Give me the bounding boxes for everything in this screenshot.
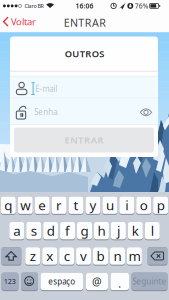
staticText: o bbox=[140, 196, 148, 214]
staticText: k bbox=[132, 222, 139, 239]
button[interactable]: E-mail bbox=[10, 71, 158, 98]
button[interactable]: z bbox=[25, 247, 40, 266]
button[interactable]: m bbox=[127, 247, 142, 266]
staticText: w bbox=[20, 196, 30, 214]
button[interactable]: . bbox=[110, 273, 129, 291]
staticText: . bbox=[118, 276, 121, 291]
staticText: OUTROS bbox=[65, 47, 104, 60]
button[interactable]: v bbox=[76, 247, 91, 266]
staticText: e bbox=[38, 196, 46, 214]
button[interactable]: i bbox=[119, 196, 134, 215]
staticText: l bbox=[151, 222, 154, 239]
staticText: 123 bbox=[4, 277, 16, 286]
button[interactable]: Voltar bbox=[1, 14, 39, 29]
staticText: j bbox=[117, 222, 120, 239]
button[interactable]: j bbox=[111, 222, 126, 240]
staticText: r bbox=[56, 196, 62, 214]
staticText: u bbox=[106, 196, 114, 214]
button[interactable]: Emoji bbox=[21, 273, 38, 291]
staticText: Seguinte bbox=[132, 276, 166, 287]
staticText: E-mail bbox=[35, 83, 57, 94]
button[interactable]: h bbox=[94, 222, 109, 240]
staticText: Senha bbox=[34, 107, 57, 117]
button[interactable]: k bbox=[128, 222, 143, 240]
button[interactable]: p bbox=[153, 196, 168, 215]
button[interactable]: t bbox=[68, 196, 83, 215]
button[interactable]: Apagar bbox=[148, 247, 167, 266]
button[interactable]: @ bbox=[86, 273, 108, 291]
staticText: a bbox=[13, 222, 20, 239]
staticText: Claro BR bbox=[24, 2, 43, 10]
button[interactable]: x bbox=[42, 247, 57, 266]
staticText: ENTRAR bbox=[64, 134, 103, 146]
staticText: p bbox=[157, 196, 165, 214]
staticText: y bbox=[89, 196, 96, 214]
staticText: Voltar bbox=[11, 15, 36, 28]
staticText: ENTRAR bbox=[64, 15, 106, 30]
staticText: s bbox=[31, 222, 37, 239]
button[interactable]: w bbox=[18, 196, 33, 215]
staticText: @ bbox=[92, 274, 102, 288]
button[interactable]: a bbox=[9, 222, 24, 240]
button[interactable]: b bbox=[93, 247, 108, 266]
staticText: v bbox=[80, 247, 87, 265]
staticText: 76% bbox=[135, 2, 149, 10]
button[interactable]: o bbox=[136, 196, 151, 215]
staticText: b bbox=[96, 247, 104, 265]
button[interactable]: Senha bbox=[10, 98, 158, 124]
button[interactable]: e bbox=[35, 196, 50, 215]
button[interactable]: d bbox=[43, 222, 58, 240]
button[interactable]: 123 bbox=[1, 273, 18, 291]
button[interactable]: y bbox=[85, 196, 100, 215]
staticText: f bbox=[65, 222, 70, 239]
button[interactable]: Shift bbox=[1, 247, 21, 266]
button[interactable]: Seguinte bbox=[131, 273, 167, 291]
button[interactable]: q bbox=[1, 196, 16, 215]
button[interactable]: c bbox=[59, 247, 74, 266]
button[interactable]: l bbox=[145, 222, 160, 240]
staticText: 16:06 bbox=[75, 2, 93, 10]
staticText: c bbox=[64, 247, 70, 265]
button[interactable]: espaço bbox=[40, 273, 83, 291]
staticText: q bbox=[4, 196, 12, 214]
button[interactable]: g bbox=[77, 222, 92, 240]
button[interactable]: r bbox=[52, 196, 67, 215]
staticText: z bbox=[30, 247, 36, 265]
button[interactable]: f bbox=[60, 222, 75, 240]
staticText: m bbox=[128, 247, 140, 265]
button[interactable]: s bbox=[26, 222, 41, 240]
staticText: d bbox=[47, 222, 55, 239]
staticText: i bbox=[125, 196, 128, 214]
staticText: espaço bbox=[48, 276, 75, 287]
staticText: n bbox=[113, 247, 121, 265]
staticText: g bbox=[80, 222, 88, 239]
staticText: x bbox=[46, 247, 53, 265]
button[interactable]: n bbox=[110, 247, 125, 266]
button[interactable]: u bbox=[102, 196, 117, 215]
button[interactable]: Entrar bbox=[14, 127, 154, 152]
staticText: t bbox=[73, 196, 78, 214]
staticText: h bbox=[97, 222, 105, 239]
button[interactable]: Mostrar senha bbox=[137, 106, 154, 119]
